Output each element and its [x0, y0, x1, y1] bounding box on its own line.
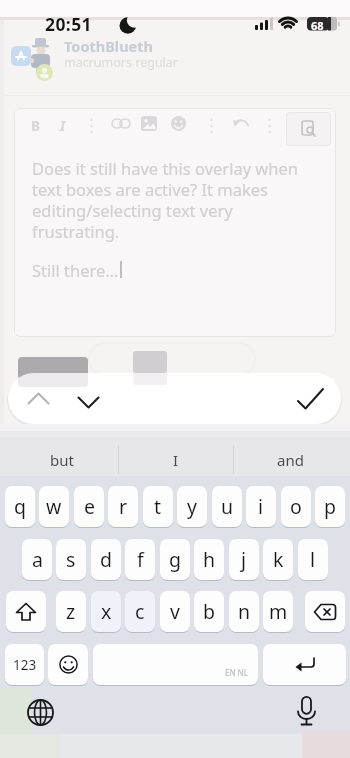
staticText: EN NL: [225, 667, 248, 678]
staticText: q: [14, 493, 26, 520]
staticText: j: [241, 546, 247, 573]
staticText: l: [310, 546, 316, 573]
button[interactable]: h: [194, 539, 224, 580]
button[interactable]: d: [91, 539, 121, 580]
staticText: k: [273, 546, 284, 573]
button[interactable]: c: [125, 591, 155, 632]
staticText: 123: [13, 656, 37, 674]
staticText: h: [203, 546, 216, 573]
button[interactable]: g: [160, 539, 190, 580]
button[interactable]: [295, 696, 318, 728]
button[interactable]: EN NL: [93, 644, 258, 685]
button[interactable]: o: [281, 486, 311, 527]
staticText: m: [269, 598, 288, 625]
button[interactable]: x: [91, 591, 121, 632]
button[interactable]: [118, 437, 232, 476]
button[interactable]: r: [108, 486, 138, 527]
staticText: text boxes are active? It makes: [32, 178, 269, 200]
button[interactable]: f: [125, 539, 155, 580]
staticText: x: [101, 598, 112, 625]
staticText: f: [137, 546, 144, 573]
button[interactable]: [263, 644, 346, 685]
staticText: n: [238, 598, 251, 625]
staticText: i: [258, 493, 264, 520]
button[interactable]: y: [177, 486, 207, 527]
button[interactable]: z: [56, 591, 86, 632]
button[interactable]: k: [263, 539, 293, 580]
staticText: 68: [311, 18, 324, 33]
button[interactable]: s: [56, 539, 86, 580]
button[interactable]: p: [315, 486, 345, 527]
staticText: r: [119, 493, 128, 520]
button[interactable]: l: [298, 539, 328, 580]
button[interactable]: [305, 591, 345, 632]
staticText: o: [290, 493, 302, 520]
button[interactable]: 123: [5, 644, 44, 685]
button[interactable]: [233, 437, 350, 476]
staticText: 20:51: [45, 12, 92, 36]
button[interactable]: [28, 392, 49, 405]
staticText: u: [221, 493, 234, 520]
button[interactable]: e: [74, 486, 104, 527]
button[interactable]: i: [246, 486, 276, 527]
staticText: Does it still have this overlay when: [32, 157, 299, 179]
staticText: B: [31, 117, 40, 135]
button[interactable]: [286, 112, 331, 146]
staticText: w: [46, 493, 62, 520]
button[interactable]: n: [229, 591, 259, 632]
button[interactable]: [14, 108, 336, 337]
staticText: macrumors regular: [64, 54, 179, 71]
button[interactable]: u: [212, 486, 242, 527]
staticText: editing/selecting text very: [32, 199, 233, 221]
button[interactable]: w: [39, 486, 69, 527]
staticText: e: [84, 493, 95, 520]
staticText: a: [32, 546, 43, 573]
staticText: ToothBlueth: [64, 36, 153, 56]
button[interactable]: [48, 644, 88, 685]
button[interactable]: j: [229, 539, 259, 580]
staticText: t: [154, 493, 162, 520]
staticText: p: [324, 493, 336, 520]
button[interactable]: [297, 388, 324, 410]
staticText: c: [135, 598, 145, 625]
staticText: s: [66, 546, 76, 573]
button[interactable]: [27, 699, 54, 726]
staticText: but: [50, 450, 74, 470]
button[interactable]: [78, 396, 99, 409]
staticText: I: [60, 117, 66, 135]
button[interactable]: m: [263, 591, 293, 632]
staticText: g: [169, 546, 181, 573]
staticText: b: [203, 598, 215, 625]
staticText: z: [66, 598, 76, 625]
button[interactable]: q: [5, 486, 35, 527]
staticText: y: [187, 493, 197, 520]
button[interactable]: v: [160, 591, 190, 632]
button[interactable]: b: [194, 591, 224, 632]
button[interactable]: [0, 437, 117, 476]
button[interactable]: t: [143, 486, 173, 527]
staticText: d: [100, 546, 112, 573]
staticText: Still there…: [32, 259, 119, 281]
button[interactable]: [6, 591, 46, 632]
button[interactable]: [22, 112, 282, 146]
staticText: frustrating.: [32, 220, 120, 242]
button[interactable]: a: [22, 539, 52, 580]
staticText: and: [277, 450, 304, 470]
staticText: I: [173, 450, 179, 470]
staticText: v: [170, 598, 180, 625]
